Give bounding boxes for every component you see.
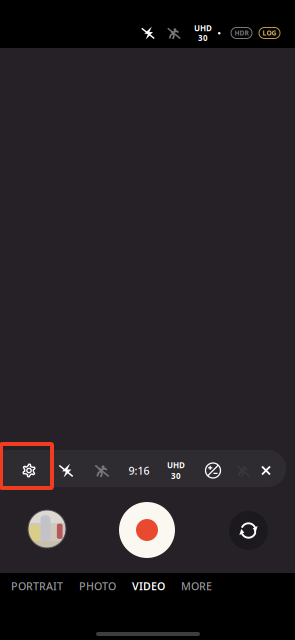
button[interactable]: Start recording	[119, 502, 175, 558]
button[interactable]: Action mode off	[87, 452, 117, 489]
button[interactable]: Switch camera	[229, 511, 268, 550]
staticText: 30	[171, 470, 181, 481]
button[interactable]: 9:16	[121, 452, 157, 489]
staticText: HDR	[234, 29, 248, 37]
button[interactable]: PHOTO	[71, 573, 124, 599]
button[interactable]: HDR	[228, 20, 255, 46]
staticText: MORE	[181, 579, 212, 593]
button[interactable]: PORTRAIT	[3, 573, 71, 599]
button[interactable]: Last captured photo	[28, 510, 66, 548]
button[interactable]: VIDEO	[124, 573, 173, 599]
button[interactable]: Camera settings	[14, 452, 44, 489]
staticText: 9:16	[128, 463, 149, 478]
button[interactable]: Exposure compensation	[198, 452, 228, 489]
staticText: VIDEO	[132, 579, 165, 593]
button[interactable]: Close controls	[253, 452, 279, 489]
staticText: UHD	[167, 460, 185, 470]
button[interactable]: Video resolution UHD 30	[191, 20, 215, 46]
staticText: PORTRAIT	[11, 579, 63, 593]
button[interactable]: LOG	[256, 20, 283, 46]
staticText: UHD	[194, 23, 212, 33]
staticText: LOG	[262, 29, 276, 37]
button[interactable]: MORE	[173, 573, 220, 599]
button[interactable]: Flash off	[136, 20, 160, 46]
button[interactable]: Action mode off	[162, 20, 186, 46]
button[interactable]: Video resolution UHD 30	[159, 452, 193, 489]
button[interactable]: More options	[231, 452, 255, 489]
staticText: 30	[198, 32, 208, 43]
button[interactable]: Flash off	[51, 452, 81, 489]
staticText: PHOTO	[79, 579, 116, 593]
